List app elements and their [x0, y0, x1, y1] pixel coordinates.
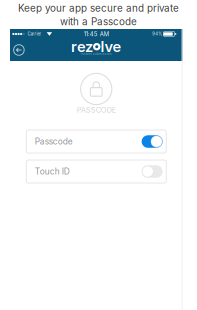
staticText: 94% [152, 31, 162, 36]
staticText: with a Passcode [60, 16, 137, 28]
staticText: PASSCODE [77, 105, 116, 114]
staticText: Keep your app secure and private [18, 2, 179, 14]
staticText: lve [101, 38, 122, 55]
staticText: Passcode [35, 136, 73, 147]
staticText: Carrier [27, 31, 41, 36]
staticText: Touch ID [35, 166, 70, 177]
staticText: rez [71, 38, 93, 55]
staticText: instant submission [81, 52, 112, 56]
staticText: 11:45 AM [84, 30, 109, 38]
button[interactable]: Passcode [26, 130, 166, 153]
button[interactable]: Touch ID [26, 160, 166, 183]
button[interactable]: Back [10, 39, 40, 61]
